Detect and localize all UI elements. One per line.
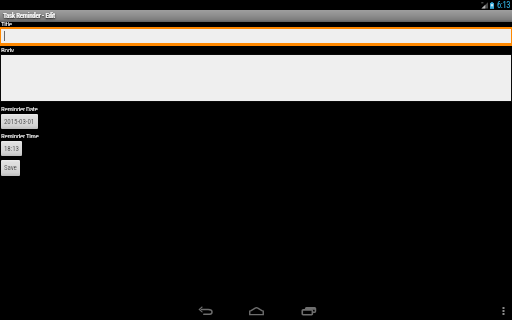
staticText: Reminder Time — [1, 133, 39, 138]
staticText: 2015-03-01 — [4, 118, 35, 126]
staticText: 18:13 — [4, 145, 19, 153]
staticText: 6:13 — [497, 0, 510, 10]
button[interactable] — [1, 29, 511, 43]
staticText: Body — [1, 47, 14, 52]
button[interactable]: 2015-03-01 — [1, 114, 38, 129]
staticText: Reminder Date — [1, 106, 38, 111]
button[interactable]: Home — [231, 296, 281, 320]
button[interactable]: 18:13 — [1, 141, 22, 156]
button[interactable]: More options — [494, 290, 512, 320]
staticText: Save — [4, 164, 17, 172]
staticText: Task Reminder - Edit — [3, 12, 55, 20]
button[interactable]: Back — [181, 296, 231, 320]
button[interactable]: Save — [1, 160, 20, 176]
button[interactable]: Recent apps — [281, 296, 331, 320]
staticText: Title — [1, 21, 12, 26]
